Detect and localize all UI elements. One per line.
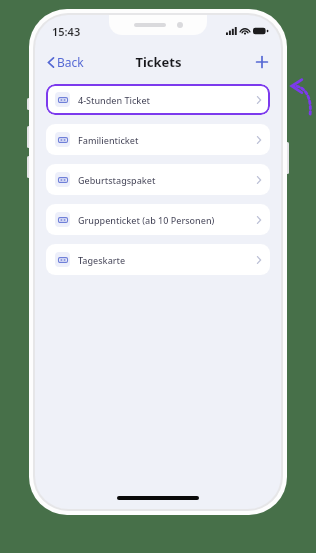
button[interactable]: Back — [43, 50, 92, 74]
staticText: Geburtstagspaket — [78, 174, 257, 186]
staticText: Back — [57, 54, 84, 70]
button[interactable]: Tageskarte — [46, 244, 270, 275]
button[interactable]: Gruppenticket (ab 10 Personen) — [46, 204, 270, 235]
staticText: 4-Stunden Ticket — [78, 94, 257, 106]
staticText: 15:43 — [52, 24, 81, 39]
staticText: Tageskarte — [78, 254, 257, 266]
staticText: Familienticket — [78, 134, 257, 146]
button[interactable]: Add ticket — [251, 51, 273, 73]
button[interactable]: Geburtstagspaket — [46, 164, 270, 195]
button[interactable]: Familienticket — [46, 124, 270, 155]
button[interactable]: 4-Stunden Ticket — [46, 84, 270, 115]
staticText: Gruppenticket (ab 10 Personen) — [78, 214, 257, 226]
staticText: Tickets — [135, 53, 182, 71]
